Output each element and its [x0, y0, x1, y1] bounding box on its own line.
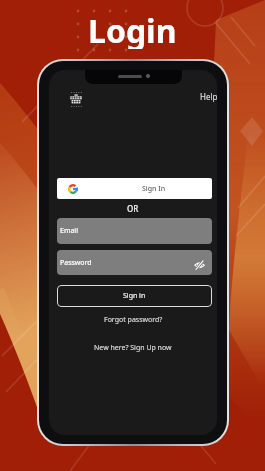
button[interactable]: Email — [57, 218, 212, 244]
button[interactable]: Password — [57, 250, 212, 275]
staticText: Sign In — [142, 184, 166, 194]
staticText: Forgot password? — [104, 315, 163, 325]
button[interactable]: Sign In — [57, 178, 212, 199]
button[interactable]: Sign in — [57, 285, 212, 307]
other: Show password — [194, 260, 205, 270]
button[interactable]: New here? Sign Up now — [94, 343, 172, 353]
button[interactable]: Forgot password? — [104, 315, 163, 325]
staticText: Email — [60, 226, 78, 236]
staticText: Help — [200, 91, 217, 102]
staticText: OR — [127, 203, 139, 214]
staticText: Login — [88, 9, 177, 49]
staticText: Sign in — [123, 291, 146, 301]
staticText: New here? Sign Up now — [94, 343, 172, 353]
staticText: Password — [60, 258, 92, 268]
button[interactable]: Help — [200, 91, 217, 102]
